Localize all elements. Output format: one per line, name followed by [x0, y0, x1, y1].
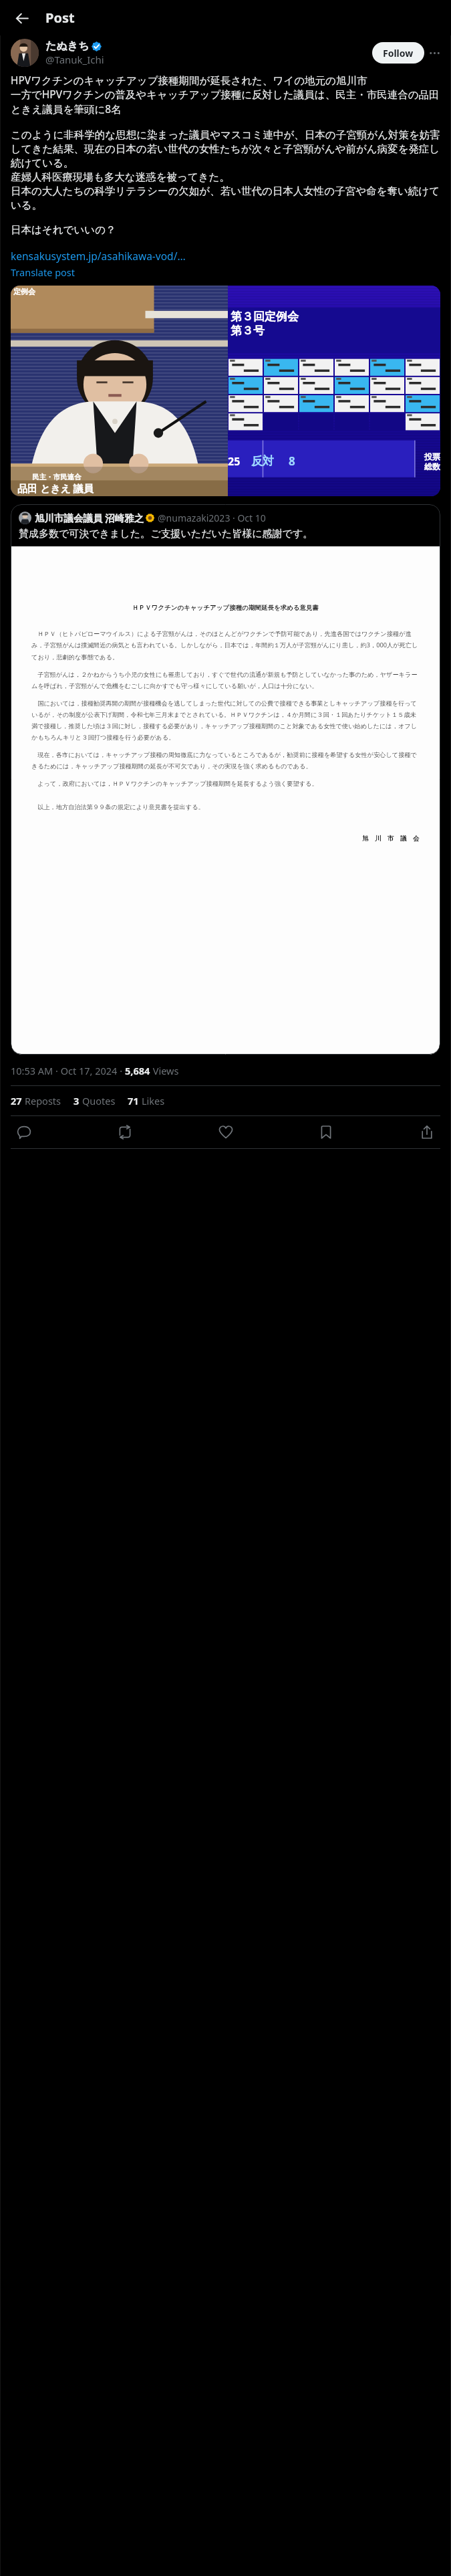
staticText: 現在，各市においては，キャッチアップ接種の周知徹底に力なっているところであるが，… [31, 750, 420, 770]
button[interactable]: Share [414, 1119, 440, 1146]
staticText: Follow [383, 47, 414, 60]
staticText: HPVワクチンのキャッチアップ接種期間が延長された、ワイの地元の旭川市 一方でH… [11, 73, 440, 116]
button[interactable]: Follow [372, 42, 424, 64]
staticText: 子宮頸がんは，２かねからうち小児の女性にも罹患しており，すぐで世代の流通が新規も… [31, 670, 420, 689]
staticText: 反対 [251, 454, 274, 468]
button[interactable]: Repost [112, 1119, 138, 1146]
button[interactable]: Back [9, 5, 35, 31]
staticText: 旭川市議会議員 沼崎雅之 [35, 511, 144, 524]
staticText: Likes [142, 1094, 165, 1107]
staticText: 民主・市民連合 [32, 473, 82, 481]
staticText: 71 [128, 1094, 139, 1107]
staticText: 定例会 [13, 287, 35, 296]
staticText: 品田 ときえ 議員 [17, 481, 94, 495]
staticText: 3 [73, 1094, 80, 1107]
staticText: 5,684 [125, 1064, 150, 1077]
staticText: 以上，地方自治法第９９条の規定により意見書を提出する。 [31, 802, 204, 811]
staticText: 25 [228, 454, 241, 469]
staticText: たぬきち [45, 39, 90, 53]
button[interactable]: Bookmark [313, 1119, 339, 1146]
staticText: ＨＰＶワクチンのキャッチアップ接種の期間延長を求める意見書 [132, 604, 319, 612]
staticText: よって，政府においては，ＨＰＶワクチンのキャッチアップ接種期間を延長するよう強く… [31, 779, 318, 788]
staticText: Post [45, 9, 75, 27]
staticText: 旭 川 市 議 会 [362, 834, 420, 843]
staticText: 日本はそれでいいの？ [11, 223, 116, 237]
staticText: 27 [11, 1094, 22, 1107]
staticText: 国においては，接種勧奨再開の期間が接種機会を逃してしまった世代に対しての公費で接… [31, 699, 420, 741]
button[interactable]: Profile photo [11, 39, 39, 67]
button[interactable]: kensakusystem.jp/asahikawa-vod/… [11, 249, 186, 263]
button[interactable]: More options [424, 43, 444, 63]
button[interactable]: 旭川市議会議員 沼崎雅之 [11, 504, 440, 1055]
button[interactable]: Reply [11, 1119, 37, 1146]
staticText: Views [150, 1064, 179, 1077]
button[interactable]: 71 [128, 1094, 165, 1107]
button[interactable]: 27 [11, 1094, 61, 1107]
staticText: 投票 [424, 451, 440, 461]
staticText: 第３回定例会 [231, 310, 299, 324]
staticText: 8 [289, 453, 295, 469]
staticText: 賛成多数で可決できました。ご支援いただいた皆様に感謝です。 [19, 528, 313, 540]
staticText: ＨＰＶ（ヒトパピローマウイルス）による子宮頸がんは，そのほとんどがワクチンで予防… [31, 629, 420, 661]
staticText: Quotes [82, 1094, 116, 1107]
button[interactable]: Translate post [11, 265, 76, 279]
staticText: @Tanuk_Ichi [45, 53, 104, 66]
staticText: 第３号 [231, 324, 265, 338]
staticText: Reposts [25, 1094, 61, 1107]
button[interactable]: 3 [73, 1094, 116, 1107]
button[interactable]: Video [11, 286, 440, 496]
staticText: @numazaki2023 · Oct 10 [158, 512, 266, 524]
staticText: 10:53 AM · Oct 17, 2024 · [11, 1064, 125, 1077]
staticText: 総数 [424, 461, 440, 471]
button[interactable]: Like [212, 1119, 239, 1146]
staticText: このように非科学的な思想に染まった議員やマスコミ連中が、日本の子宮頸がん対策を妨… [11, 128, 440, 211]
